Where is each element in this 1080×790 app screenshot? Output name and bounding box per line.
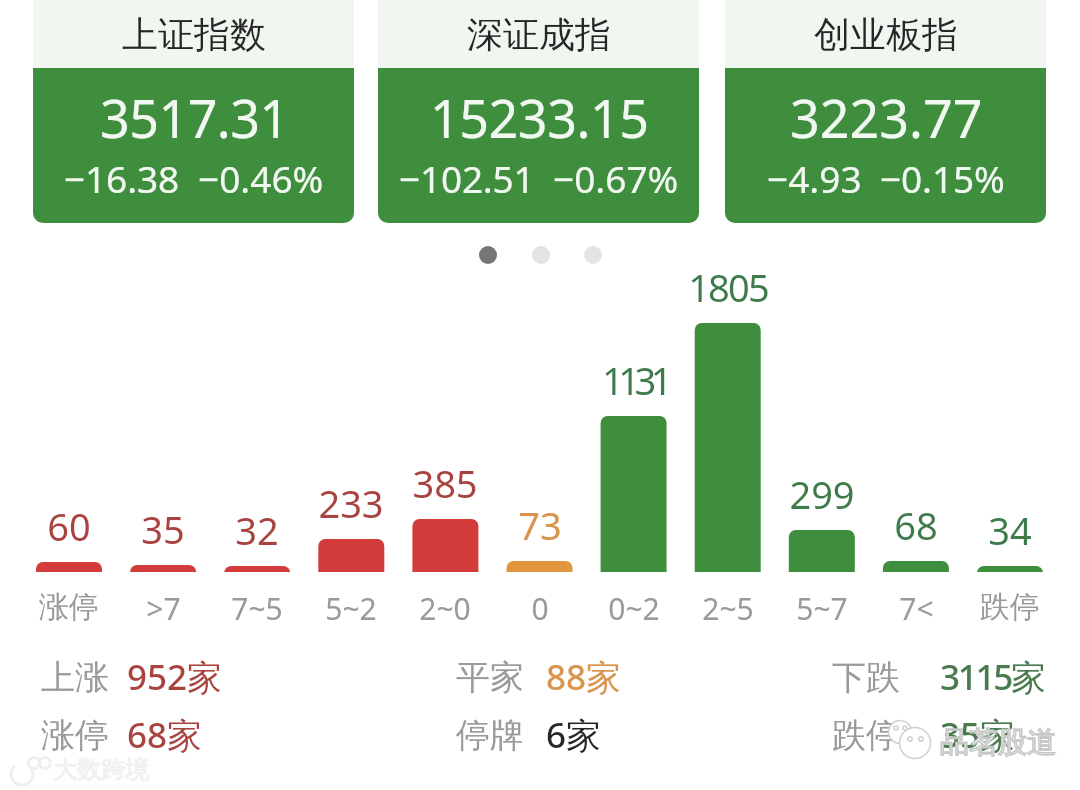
button[interactable]: 跌停 34 stocks [963,270,1057,622]
staticText: 跌停 [980,588,1040,626]
staticText: 停牌 [456,714,524,757]
button[interactable]: Go to page 1 [473,240,502,269]
staticText: −0.67% [553,153,679,203]
button[interactable]: 5~2 233 stocks [304,270,398,622]
staticText: 5~2 [325,588,377,629]
button[interactable]: 创业板指 [725,0,1046,223]
staticText: 385 [412,457,478,509]
button[interactable]: 上涨 [41,653,223,701]
staticText: 上证指数 [122,12,266,57]
staticText: 跌停 [832,714,900,757]
button[interactable]: 下跌 [832,653,1044,701]
button[interactable]: 停牌 [456,711,602,759]
staticText: 299 [789,468,855,520]
button[interactable]: 涨停 [41,711,203,759]
staticText: 3223.77 [790,82,983,153]
staticText: 7< [899,588,934,629]
button[interactable]: 7< 68 stocks [869,270,963,622]
button[interactable]: 5~7 299 stocks [775,270,869,622]
staticText: 3115家 [940,653,1044,701]
staticText: >7 [146,588,181,629]
staticText: −16.38 [64,153,180,203]
button[interactable]: 0 73 stocks [492,270,586,622]
staticText: −4.93 [767,153,862,203]
button[interactable]: 0~2 1131 stocks [587,270,681,622]
staticText: 深证成指 [467,12,611,57]
staticText: 1805 [688,261,768,313]
staticText: 上涨 [41,656,109,699]
staticText: 创业板指 [814,12,958,57]
staticText: 2~0 [419,588,471,629]
staticText: 2~5 [702,588,754,629]
button[interactable]: 深证成指 [378,0,699,223]
button[interactable]: Go to page 3 [578,240,607,269]
staticText: 涨停 [39,588,99,626]
staticText: 3517.31 [100,82,289,153]
staticText: 7~5 [231,588,283,629]
staticText: 35家 [940,711,1016,759]
staticText: 35 [141,503,185,555]
button[interactable]: 2~5 1805 stocks [681,270,775,622]
staticText: 34 [988,504,1032,556]
button[interactable]: 7~5 32 stocks [210,270,304,622]
button[interactable]: 涨停 60 stocks [22,270,116,622]
staticText: 68家 [127,711,203,759]
staticText: 60 [47,500,91,552]
staticText: 6家 [546,711,602,759]
staticText: 0~2 [608,588,660,629]
button[interactable]: >7 35 stocks [116,270,210,622]
button[interactable]: 跌停 [832,711,1016,759]
staticText: 15233.15 [430,82,649,153]
button[interactable]: 平家 [456,653,622,701]
staticText: 1131 [602,354,667,406]
staticText: 233 [318,477,384,529]
button[interactable]: Go to page 2 [526,240,555,269]
staticText: 平家 [456,656,524,699]
staticText: 68 [894,499,938,551]
staticText: 涨停 [41,714,109,757]
staticText: 0 [531,588,549,629]
staticText: 下跌 [832,656,900,699]
staticText: 88家 [546,653,622,701]
staticText: 952家 [127,653,223,701]
staticText: −102.51 [399,153,535,203]
staticText: 32 [235,504,279,556]
staticText: 73 [518,499,562,551]
staticText: 大数跨境 [53,755,149,785]
button[interactable]: 上证指数 [33,0,354,223]
button[interactable]: 2~0 385 stocks [398,270,492,622]
staticText: 5~7 [796,588,848,629]
staticText: 品茗股道 [940,724,1056,761]
staticText: 品茗股道 [940,724,1056,761]
staticText: −0.15% [880,153,1005,203]
staticText: −0.46% [198,153,324,203]
